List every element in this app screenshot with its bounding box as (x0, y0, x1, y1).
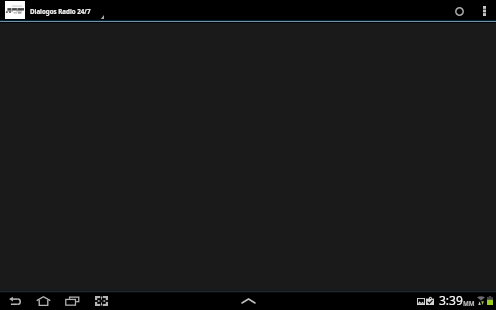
button[interactable]: Dialogos Radio 24/7 (30, 7, 91, 15)
button[interactable]: Refresh (449, 1, 469, 21)
button[interactable]: Recent apps (60, 291, 85, 310)
button[interactable]: Dialogos Radio (5, 1, 25, 21)
button[interactable]: Home (31, 291, 56, 310)
staticText: MM (463, 299, 475, 307)
button[interactable]: Back (4, 292, 26, 310)
button[interactable]: Hide navigation (238, 294, 258, 308)
button[interactable]: Screenshot (90, 291, 113, 310)
button[interactable]: More options (474, 1, 494, 21)
staticText: Dialogos Radio 24/7 (30, 7, 91, 15)
staticText: 3:39 (439, 292, 463, 308)
